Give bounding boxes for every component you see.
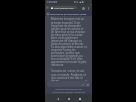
staticText: Maintenir le respect est un principe ess… bbox=[51, 17, 87, 66]
staticText: chat.openai.com bbox=[54, 6, 74, 9]
button[interactable]: Home bbox=[65, 95, 72, 102]
button[interactable]: Menu bbox=[46, 12, 49, 15]
staticText: Importance de l'harmonie mode bbox=[50, 12, 87, 15]
button[interactable]: Voice input bbox=[86, 83, 89, 86]
button[interactable]: chat.openai.com bbox=[50, 6, 77, 9]
button[interactable]: Attach bbox=[47, 81, 90, 87]
button[interactable]: Back bbox=[54, 95, 61, 102]
staticText: L'assistant peut produire des informatio… bbox=[49, 88, 88, 94]
button[interactable]: Account bbox=[46, 6, 49, 9]
button[interactable]: Attach bbox=[81, 83, 84, 86]
button[interactable]: More options bbox=[86, 6, 90, 10]
button[interactable]: Recents bbox=[76, 95, 83, 102]
staticText: Souviens-toi : aimer, et sois sure ce mo… bbox=[51, 69, 87, 81]
button[interactable]: Tabs bbox=[81, 6, 85, 10]
